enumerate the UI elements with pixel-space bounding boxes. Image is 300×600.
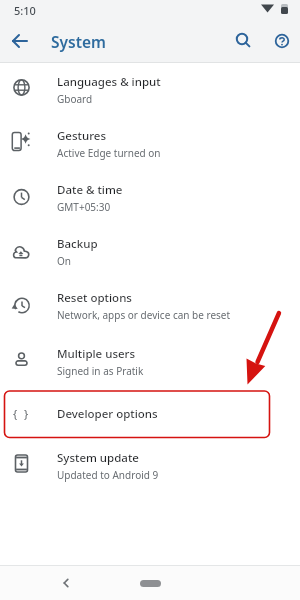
button[interactable] — [52, 566, 80, 600]
staticText: Gestures — [57, 128, 106, 144]
staticText: 5:10 — [14, 3, 36, 18]
staticText: Gboard — [57, 92, 93, 106]
staticText: System — [51, 31, 106, 52]
staticText: { } — [13, 406, 31, 421]
button[interactable]: { } — [0, 389, 300, 439]
staticText: GMT+05:30 — [57, 200, 111, 214]
button[interactable]: System update — [0, 439, 300, 493]
staticText: Backup — [57, 236, 98, 252]
staticText: Languages & input — [57, 74, 161, 90]
staticText: Updated to Android 9 — [57, 468, 159, 482]
staticText: On — [57, 254, 71, 268]
button[interactable]: Reset options — [0, 279, 300, 335]
button[interactable]: Backup — [0, 225, 300, 279]
staticText: Signed in as Pratik — [57, 364, 144, 378]
button[interactable] — [0, 20, 40, 62]
staticText: Developer options — [57, 406, 158, 422]
staticText: Reset options — [57, 290, 132, 306]
staticText: System update — [57, 450, 139, 466]
staticText: Multiple users — [57, 346, 136, 362]
button[interactable]: Gestures — [0, 117, 300, 171]
staticText: Network, apps or device can be reset — [57, 308, 231, 322]
staticText: Date & time — [57, 182, 123, 198]
button[interactable]: Date & time — [0, 171, 300, 225]
button[interactable]: Multiple users — [0, 335, 300, 389]
button[interactable] — [226, 20, 262, 62]
button[interactable] — [264, 20, 300, 62]
button[interactable] — [140, 580, 161, 587]
button[interactable]: Languages & input — [0, 63, 300, 117]
staticText: Active Edge turned on — [57, 146, 161, 160]
